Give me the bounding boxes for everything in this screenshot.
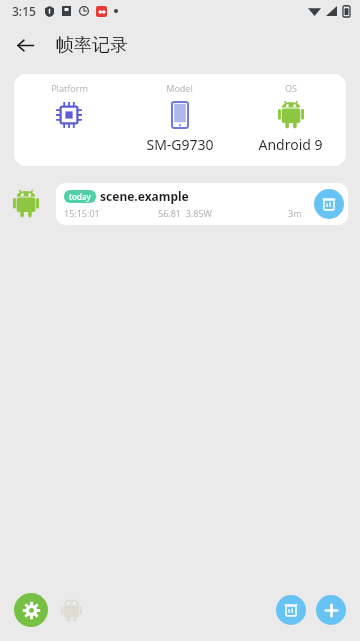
button[interactable]: Platform [14, 74, 346, 166]
staticText: Platform [51, 82, 88, 94]
button[interactable]: Apps [54, 593, 88, 627]
staticText: Android 9 [258, 135, 323, 154]
button[interactable]: Reports [276, 595, 306, 625]
button[interactable]: today [56, 183, 348, 225]
staticText: SM-G9730 [146, 135, 214, 154]
staticText: OS [285, 82, 297, 94]
staticText: scene.example [100, 188, 189, 204]
staticText: 3m [288, 207, 302, 219]
button[interactable]: Settings [14, 593, 48, 627]
staticText: Model [166, 82, 193, 94]
button[interactable]: Report [314, 189, 344, 219]
staticText: 3:15 [12, 3, 36, 19]
staticText: today [69, 191, 91, 202]
staticText: 56.81 3.85W [158, 207, 212, 219]
staticText: 15:15:01 [64, 207, 100, 219]
staticText: 帧率记录 [56, 34, 128, 57]
button[interactable]: Back [8, 28, 42, 62]
button[interactable]: Add [316, 595, 346, 625]
